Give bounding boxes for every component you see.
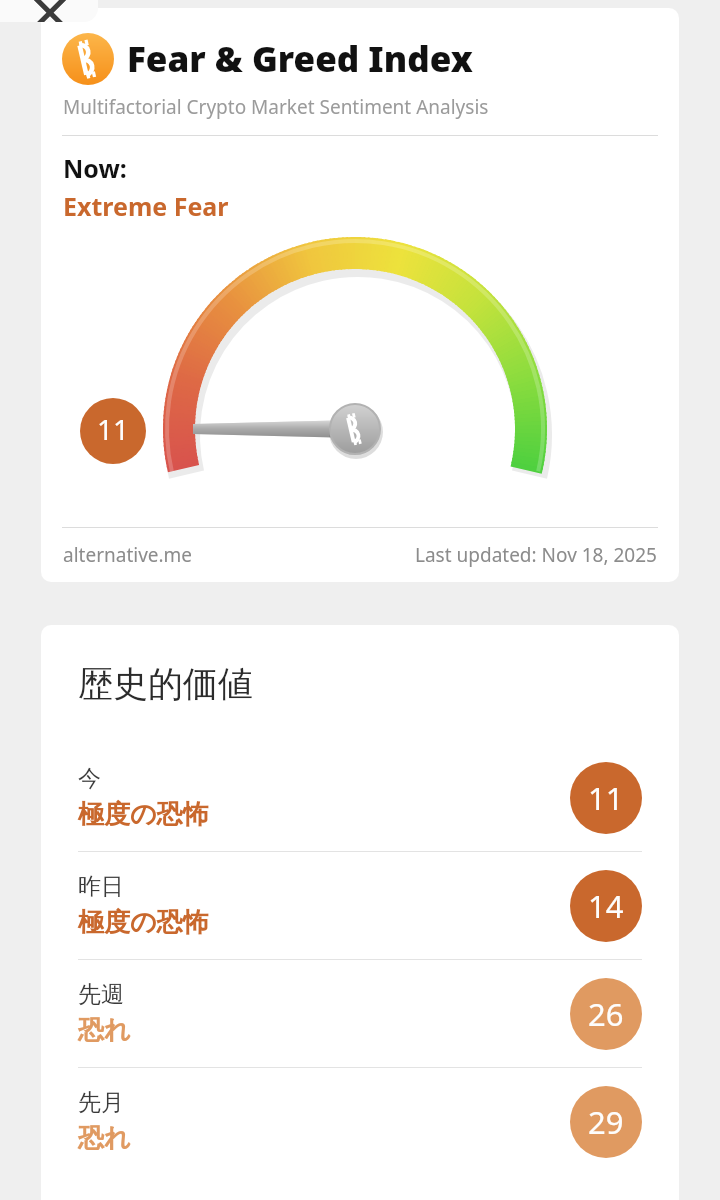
staticText: Fear & Greed Index <box>127 35 473 83</box>
staticText: 先月 <box>78 1088 124 1117</box>
button[interactable]: 先週 <box>41 960 679 1068</box>
button[interactable]: 昨日 <box>41 852 679 960</box>
staticText: 恐れ <box>78 1014 131 1047</box>
staticText: 29 <box>588 1101 624 1143</box>
staticText: 歴史的価値 <box>78 662 253 706</box>
staticText: Multifactorial Crypto Market Sentiment A… <box>63 94 489 120</box>
staticText: Last updated: Nov 18, 2025 <box>415 542 657 568</box>
button[interactable]: alternative.me <box>63 542 193 568</box>
staticText: 14 <box>588 885 624 927</box>
staticText: Extreme Fear <box>63 189 229 223</box>
staticText: 極度の恐怖 <box>78 906 209 939</box>
staticText: 恐れ <box>78 1122 131 1155</box>
staticText: 昨日 <box>78 872 124 901</box>
staticText: 極度の恐怖 <box>78 798 209 831</box>
button[interactable]: 今 <box>41 744 679 852</box>
staticText: 今 <box>78 764 101 793</box>
staticText: 11 <box>97 410 130 448</box>
staticText: 先週 <box>78 980 124 1009</box>
button[interactable]: 先月 <box>41 1068 679 1175</box>
button[interactable]: Close <box>0 0 98 22</box>
staticText: Now: <box>63 151 127 185</box>
staticText: 11 <box>588 777 624 819</box>
staticText: 26 <box>588 993 624 1035</box>
